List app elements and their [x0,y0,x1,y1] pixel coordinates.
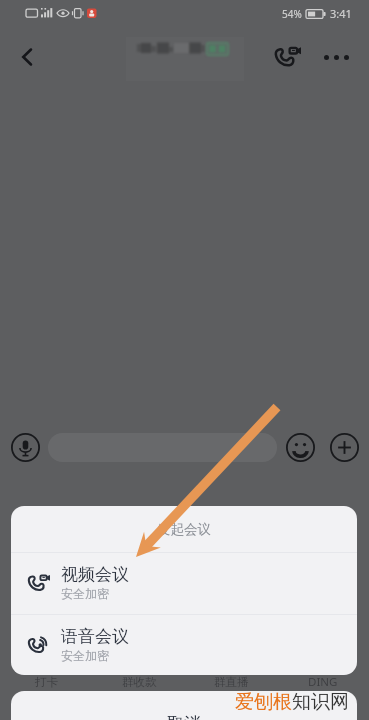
staticText: DING [308,674,338,690]
button[interactable]: 群直播 [185,675,277,689]
button[interactable]: 视频会议 [11,553,357,614]
staticText: 群直播 [214,675,249,689]
staticText: 发起会议 [157,521,211,538]
button[interactable]: 语音会议 [11,615,357,675]
staticText: 打卡 [35,675,58,689]
staticText: 爱刨根 [235,690,292,714]
button[interactable]: Organization tag [206,42,229,56]
button[interactable]: Emoji [284,431,316,463]
staticText: 安全加密 [61,586,109,601]
button[interactable]: Add [328,431,360,463]
staticText: 安全加密 [61,648,109,663]
button[interactable]: DING [277,674,369,690]
staticText: 3:41 [330,6,352,21]
button[interactable]: 取消 [11,691,357,720]
button[interactable]: 打卡 [0,675,93,689]
button[interactable]: 群收款 [93,675,185,689]
staticText: 取消 [167,713,201,720]
button[interactable] [48,433,277,462]
staticText: 54% [282,7,302,21]
staticText: 语音会议 [61,626,129,647]
button[interactable]: Video call [267,36,309,78]
staticText: 知识网 [292,690,349,714]
staticText: 视频会议 [61,564,129,585]
staticText: 群收款 [122,675,157,689]
button[interactable]: Voice input [9,431,41,463]
button[interactable]: More options [315,36,357,78]
button[interactable]: Back [6,36,48,78]
